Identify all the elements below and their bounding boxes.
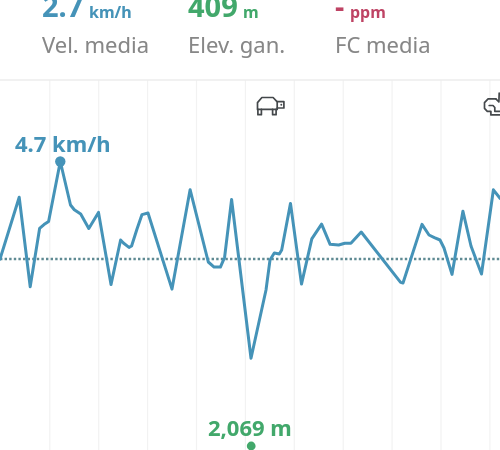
staticText: Elev. gan. [188,29,286,59]
staticText: 2.7 [42,0,84,25]
button[interactable]: - [335,0,482,80]
button[interactable]: Fastest pace [482,90,500,118]
staticText: Vel. media [42,29,149,59]
staticText: 409 [188,0,238,25]
button[interactable]: 409 [188,0,335,80]
staticText: FC media [335,29,431,59]
staticText: - [335,0,345,25]
staticText: km/h [89,1,132,23]
staticText: ppm [350,1,386,23]
button[interactable]: 2.7 [42,0,188,80]
staticText: 2,069 m [208,412,292,442]
button[interactable]: Slowest pace [254,94,286,118]
staticText: 4.7 km/h [15,128,111,158]
staticText: m [243,1,259,23]
